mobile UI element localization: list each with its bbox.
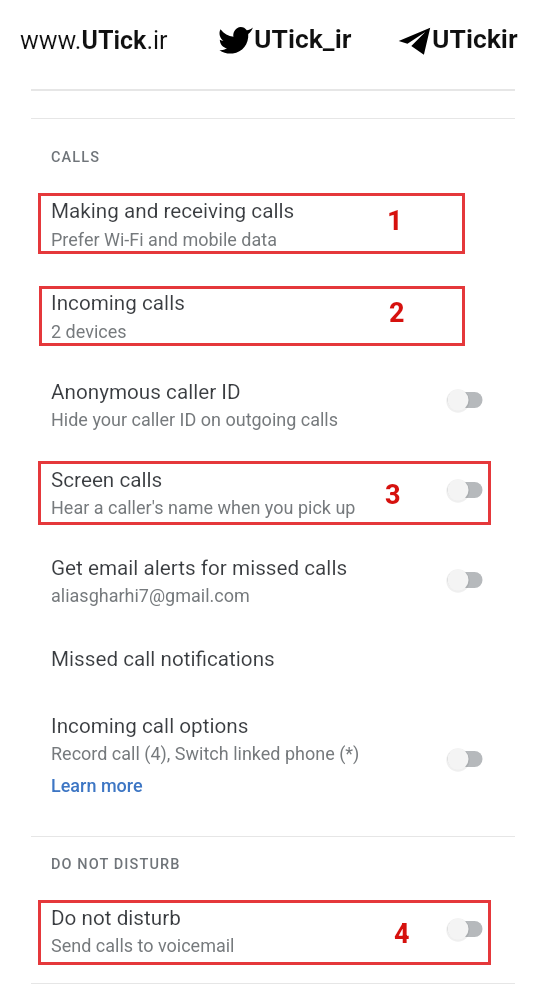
- button[interactable]: [38, 543, 503, 618]
- button[interactable]: Telegram: [398, 21, 519, 59]
- staticText: Hear a caller's name when you pick up: [51, 497, 356, 518]
- button[interactable]: Email alerts toggle: [442, 562, 488, 598]
- staticText: UTickir: [432, 23, 518, 54]
- button[interactable]: Do not disturb toggle: [442, 911, 488, 947]
- button[interactable]: Incoming call options toggle: [442, 741, 488, 777]
- other: Telegram: [398, 24, 433, 56]
- staticText: Record call (4), Switch linked phone (*): [51, 743, 360, 764]
- staticText: DO NOT DISTURB: [51, 856, 181, 873]
- staticText: UTick_ir: [254, 23, 352, 54]
- staticText: 4: [394, 918, 410, 950]
- staticText: 2 devices: [51, 321, 127, 342]
- staticText: 2: [389, 297, 405, 329]
- button[interactable]: Learn more: [51, 775, 143, 796]
- button[interactable]: Twitter: [218, 21, 352, 59]
- staticText: 3: [385, 479, 401, 511]
- button[interactable]: www.UTick.ir: [20, 26, 168, 55]
- staticText: Screen calls: [51, 468, 163, 492]
- staticText: Do not disturb: [51, 906, 181, 930]
- staticText: Hide your caller ID on outgoing calls: [51, 409, 339, 430]
- button[interactable]: [38, 182, 503, 264]
- button[interactable]: [38, 276, 503, 356]
- button[interactable]: [38, 890, 503, 975]
- staticText: 1: [387, 205, 403, 237]
- button[interactable]: Anonymous caller ID toggle: [442, 382, 488, 418]
- button[interactable]: [38, 366, 503, 440]
- other: Twitter: [218, 21, 254, 57]
- staticText: Get email alerts for missed calls: [51, 556, 348, 580]
- staticText: aliasgharhi7@gmail.com: [51, 585, 250, 606]
- button[interactable]: [38, 632, 503, 690]
- staticText: Send calls to voicemail: [51, 935, 235, 956]
- staticText: Incoming call options: [51, 714, 249, 738]
- staticText: Making and receiving calls: [51, 199, 295, 223]
- button[interactable]: Screen calls toggle: [442, 472, 488, 508]
- staticText: Anonymous caller ID: [51, 380, 241, 404]
- staticText: Missed call notifications: [51, 647, 275, 671]
- button[interactable]: [38, 700, 503, 806]
- staticText: Incoming calls: [51, 291, 185, 315]
- button[interactable]: [38, 455, 503, 530]
- staticText: CALLS: [51, 149, 101, 166]
- staticText: Prefer Wi-Fi and mobile data: [51, 229, 277, 250]
